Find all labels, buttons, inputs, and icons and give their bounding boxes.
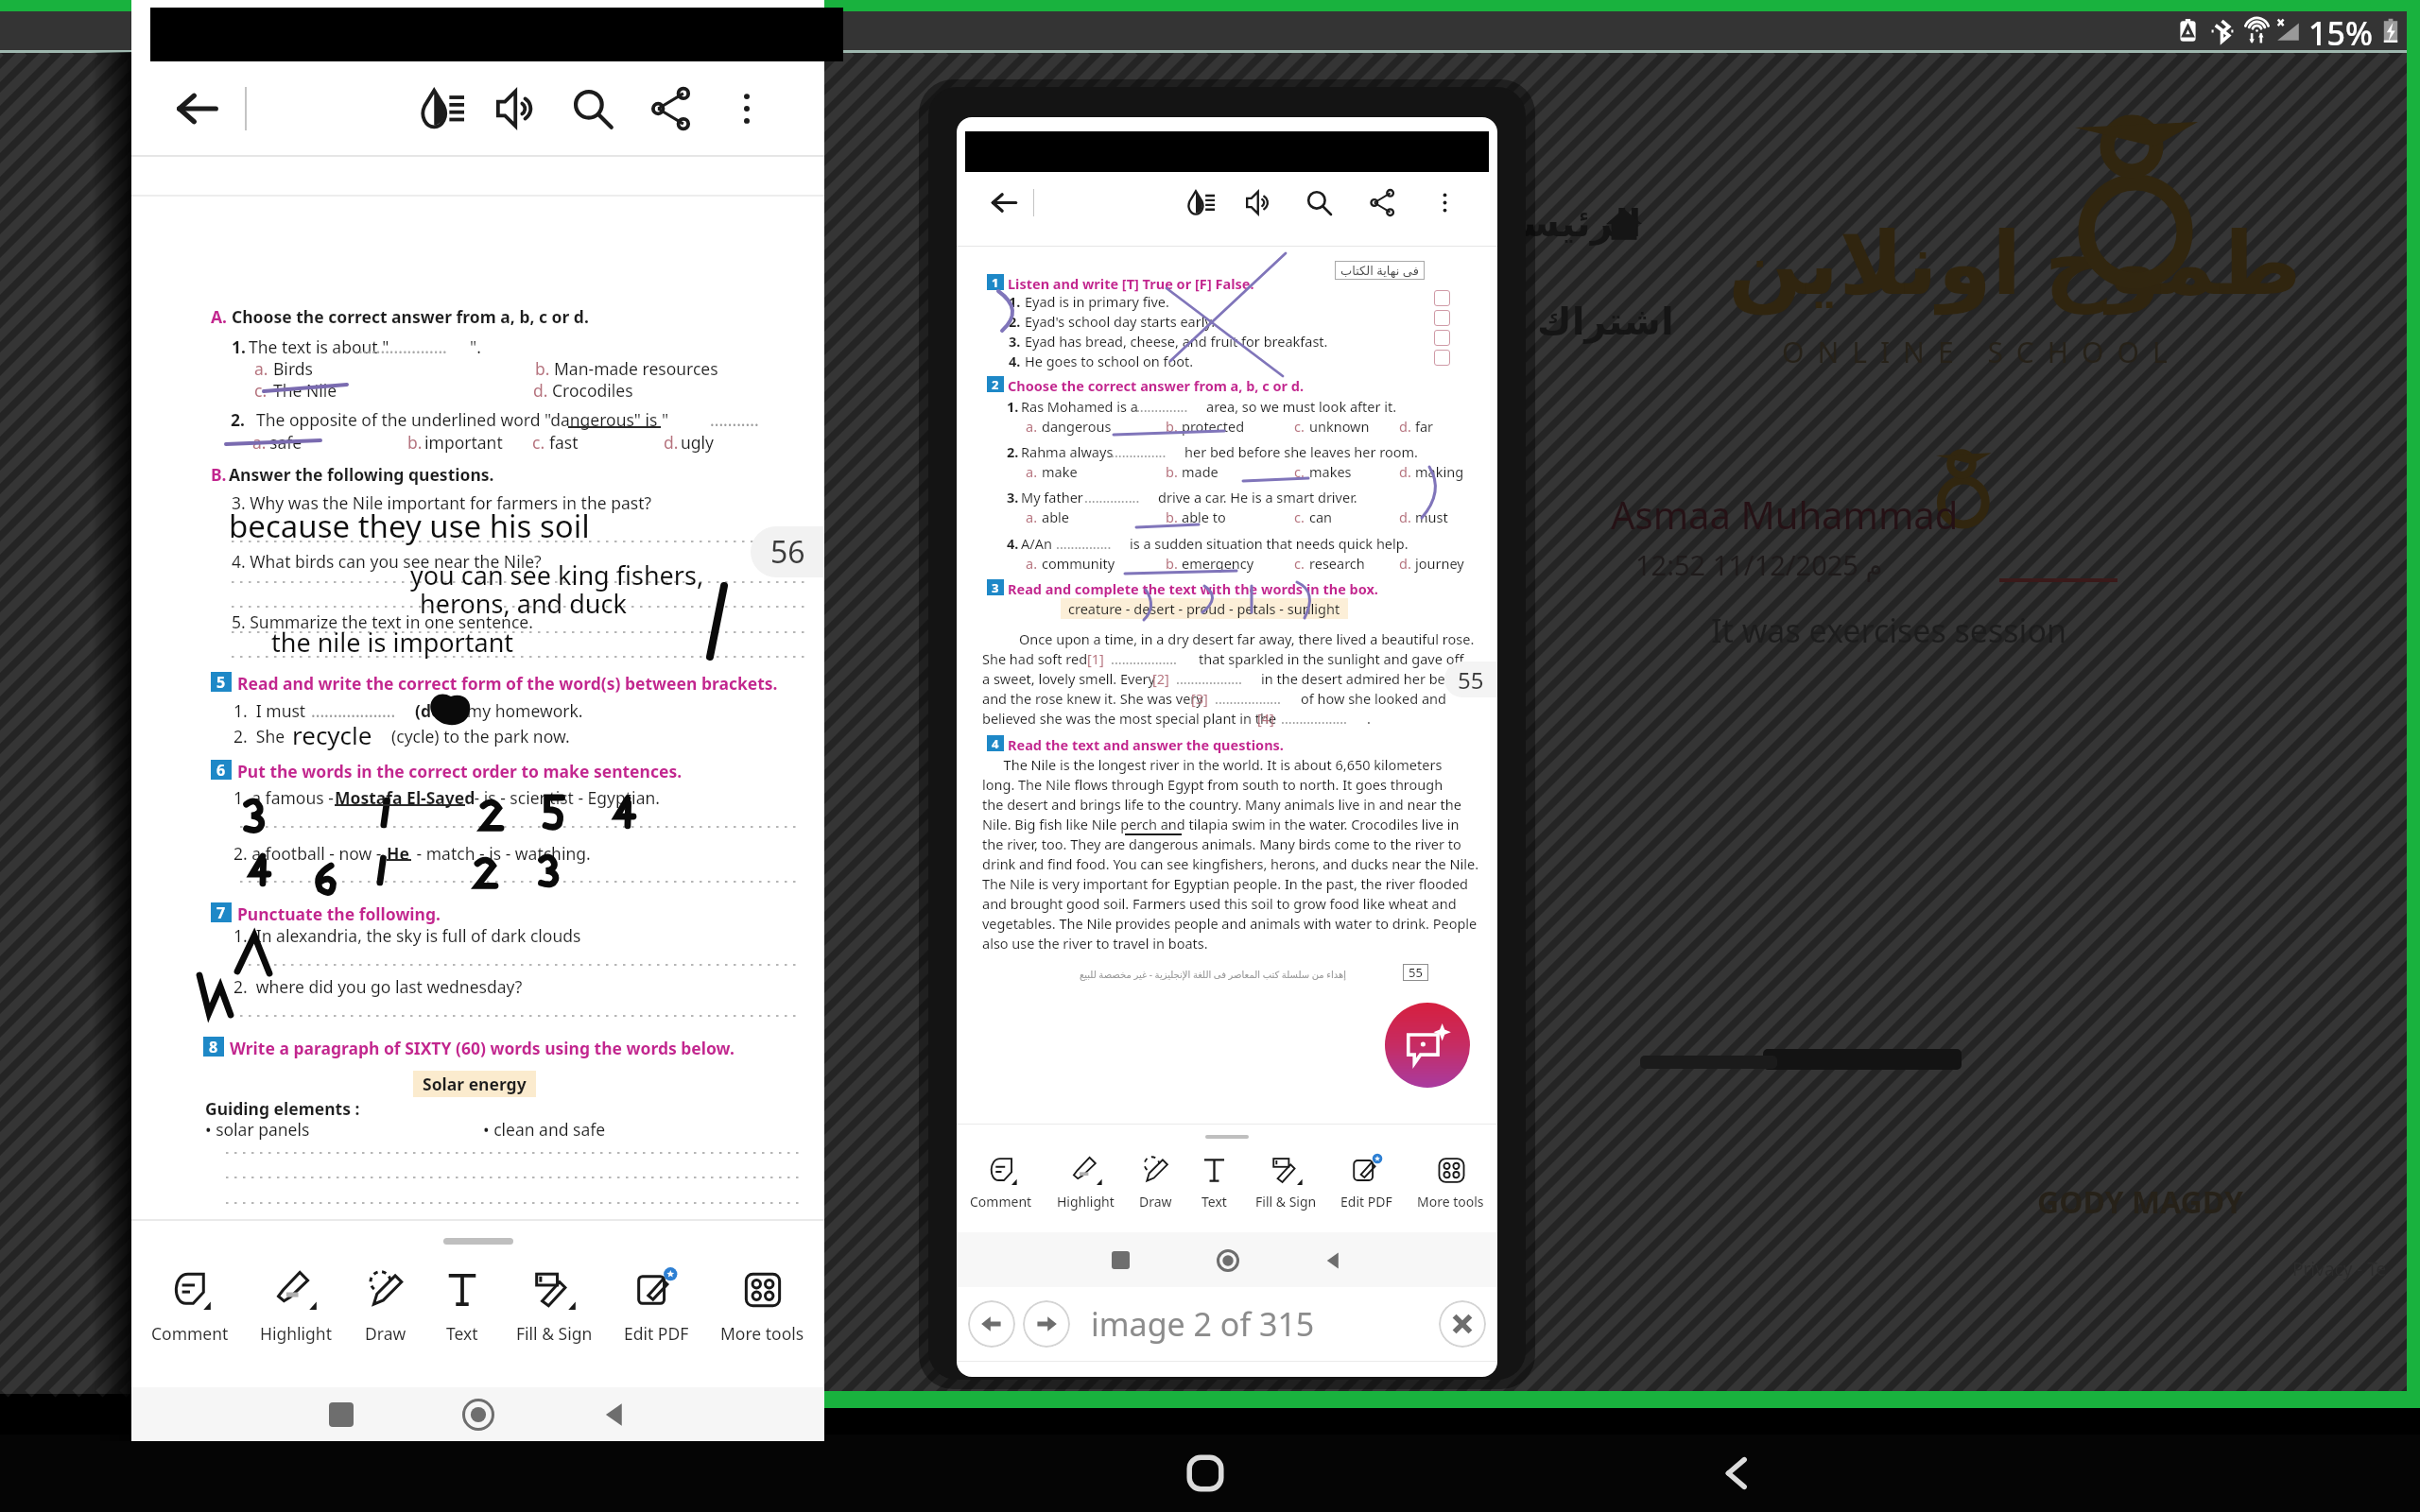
staticText: .................... [358,335,447,358]
staticText: 3. [1007,488,1019,507]
staticText: Fill & Sign [516,1322,593,1345]
button[interactable]: Search [1302,185,1336,219]
staticText: also use the river to travel in boats. [982,934,1208,953]
button[interactable]: Highlight [1055,1153,1116,1211]
button[interactable]: More tools [1415,1153,1486,1211]
staticText: and brought good soil. Farmers used this… [982,894,1457,913]
staticText: you can see king fishers, [410,558,704,593]
staticText: b. [1166,417,1178,436]
staticText: ................... [311,699,396,722]
staticText: He goes to school on foot. [1025,352,1194,370]
staticText: important [424,431,503,454]
staticText: Punctuate the following. [237,902,441,925]
button[interactable]: Draw [1136,1153,1174,1211]
staticText: She had soft red [982,649,1091,668]
staticText: Read and complete the text with the word… [1008,579,1378,598]
staticText: إهداء من سلسلة كتب المعاصر فى اللغة الإن… [1080,968,1347,981]
button[interactable]: Home [1177,1445,1234,1502]
staticText: 1 [992,274,999,290]
staticText: Read and write the correct form of the w… [237,672,778,695]
button[interactable]: Previous image [968,1300,1015,1348]
staticText: Answer the following questions. [229,463,494,486]
staticText: A. [211,305,228,328]
staticText: is a sudden situation that needs quick h… [1130,534,1409,553]
staticText: creature - desert - proud - petals - sun… [1068,599,1340,618]
staticText: 1. [232,335,246,358]
staticText: ONLINE SCHOOL [1782,333,2181,371]
button[interactable]: Share [644,81,699,136]
staticText: Put the words in the correct order to ma… [237,760,683,782]
staticText: [2] [1152,669,1169,688]
staticText: .................. [1111,649,1177,668]
button[interactable]: Recents [1103,1243,1138,1278]
staticText: 1. In alexandria, the sky is full of dar… [233,924,581,947]
button[interactable]: Back [1316,1243,1351,1278]
staticText: GODY MAGDY [2037,1181,2243,1223]
button[interactable]: Comment [148,1267,232,1345]
staticText: Text [446,1322,478,1345]
staticText: 3 [992,579,999,595]
staticText: d. [1399,507,1411,526]
staticText: 1. [1007,397,1019,416]
button[interactable]: Draw [360,1267,411,1345]
button[interactable]: More options [719,81,774,136]
staticText: (do [415,699,441,722]
staticText: c. [1294,417,1305,436]
button[interactable]: Back [987,185,1021,219]
button[interactable]: More tools [717,1267,807,1345]
button[interactable]: Night mode [1184,185,1218,219]
button[interactable]: Comment [968,1153,1034,1211]
button[interactable]: Share [1365,185,1399,219]
button[interactable]: Home [1210,1243,1245,1278]
staticText: 5 [216,672,226,692]
staticText: ............... [1111,442,1167,461]
button[interactable]: Edit PDF [621,1267,692,1345]
staticText: Draw [1139,1193,1172,1211]
button[interactable]: Recents [317,1390,366,1439]
button[interactable]: Home [454,1390,503,1439]
staticText: .................. [1281,709,1347,728]
button[interactable]: Next image [1023,1300,1070,1348]
staticText: d. [1399,417,1411,436]
button[interactable]: Fill & Sign [513,1267,596,1345]
staticText: Solar energy [423,1073,527,1095]
staticText: research [1309,554,1365,573]
button[interactable]: Highlight [257,1267,335,1345]
staticText: Ras Mohamed is a [1021,397,1138,416]
button[interactable]: Text [437,1267,488,1345]
button[interactable]: Read aloud [491,81,545,136]
button[interactable]: Search [565,81,620,136]
button[interactable]: Back [1709,1445,1766,1502]
staticText: The Nile is very important for Egyptian … [982,874,1469,893]
staticText: image 2 of 315 [1091,1302,1315,1346]
button[interactable]: AI Assistant [1385,1003,1470,1088]
staticText: area, so we must look after it. [1206,397,1397,416]
staticText: 7 [216,902,226,922]
staticText: ugly [681,431,715,454]
staticText: of how she looked and [1301,689,1446,708]
button[interactable]: Back [170,81,225,136]
staticText: 5. Summarize the text in one sentence. [232,610,533,633]
staticText: b. [407,431,423,454]
button[interactable]: Back [591,1390,640,1439]
staticText: 15% [2308,11,2373,50]
button[interactable]: Night mode [415,81,470,136]
staticText: emergency [1182,554,1254,573]
staticText: It was exercises session [1711,609,2066,652]
staticText: 2. She [233,725,285,747]
staticText: made [1182,462,1219,481]
button[interactable]: Edit PDF [1339,1153,1394,1211]
staticText: the river, too. They are dangerous anima… [982,834,1461,853]
staticText: • clean and safe [483,1118,606,1141]
button[interactable]: Text [1195,1153,1233,1211]
staticText: Eyad's school day starts early. [1025,312,1216,331]
staticText: [4] [1257,709,1274,728]
staticText: can [1309,507,1333,526]
button[interactable]: Fill & Sign [1253,1153,1319,1211]
button[interactable]: More options [1427,185,1461,219]
staticText: 2. a football - now - [233,842,387,865]
staticText: ". [470,335,481,358]
button[interactable]: Close [1439,1300,1486,1348]
staticText: ) my homework. [458,699,583,722]
button[interactable]: Read aloud [1242,185,1276,219]
